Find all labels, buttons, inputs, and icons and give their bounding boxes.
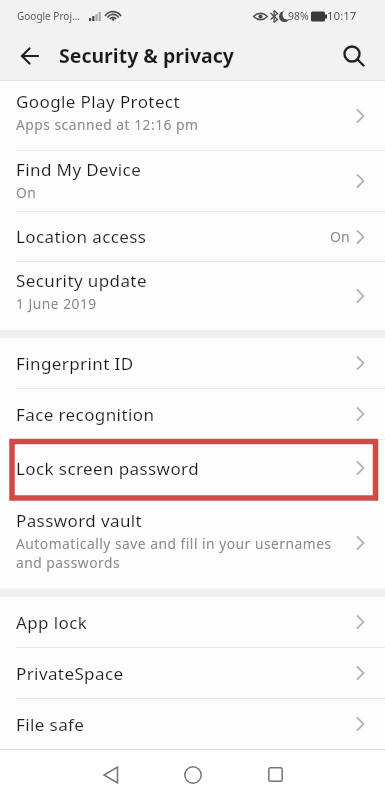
staticText: App lock <box>16 611 88 634</box>
button[interactable]: Fingerprint ID <box>0 338 385 388</box>
button[interactable]: App lock <box>0 597 385 647</box>
staticText: 10:17 <box>327 8 357 24</box>
button[interactable] <box>83 750 139 799</box>
button[interactable] <box>0 32 48 80</box>
staticText: Fingerprint ID <box>16 352 134 375</box>
staticText: Google Project... <box>17 9 81 23</box>
button[interactable]: Security update <box>0 262 385 330</box>
button[interactable]: File safe <box>0 699 385 749</box>
button[interactable]: Lock screen password <box>0 440 385 496</box>
button[interactable]: Find My Device <box>0 151 385 211</box>
staticText: Location access <box>16 225 147 248</box>
staticText: Security update <box>16 269 147 292</box>
staticText: Lock screen password <box>16 457 199 480</box>
button[interactable] <box>247 750 303 799</box>
button[interactable] <box>337 32 385 80</box>
staticText: Automatically save and fill in your user… <box>16 534 332 553</box>
staticText: On <box>330 227 350 246</box>
staticText: Google Play Protect <box>16 90 180 113</box>
staticText: Security & privacy <box>59 42 234 69</box>
staticText: 98% <box>288 9 309 23</box>
button[interactable]: Password vault <box>0 496 385 589</box>
button[interactable]: PrivateSpace <box>0 648 385 698</box>
staticText: Face recognition <box>16 403 155 426</box>
staticText: PrivateSpace <box>16 662 124 685</box>
button[interactable]: Location access <box>0 212 385 261</box>
staticText: Find My Device <box>16 158 142 181</box>
button[interactable]: Face recognition <box>0 389 385 439</box>
staticText: and passwords <box>16 553 120 572</box>
staticText: File safe <box>16 713 85 736</box>
button[interactable]: Google Play Protect <box>0 81 385 150</box>
staticText: On <box>16 183 37 202</box>
button[interactable] <box>165 750 221 799</box>
staticText: Apps scanned at 12:16 pm <box>16 115 199 134</box>
staticText: 1 June 2019 <box>16 294 97 313</box>
staticText: Password vault <box>16 509 143 532</box>
